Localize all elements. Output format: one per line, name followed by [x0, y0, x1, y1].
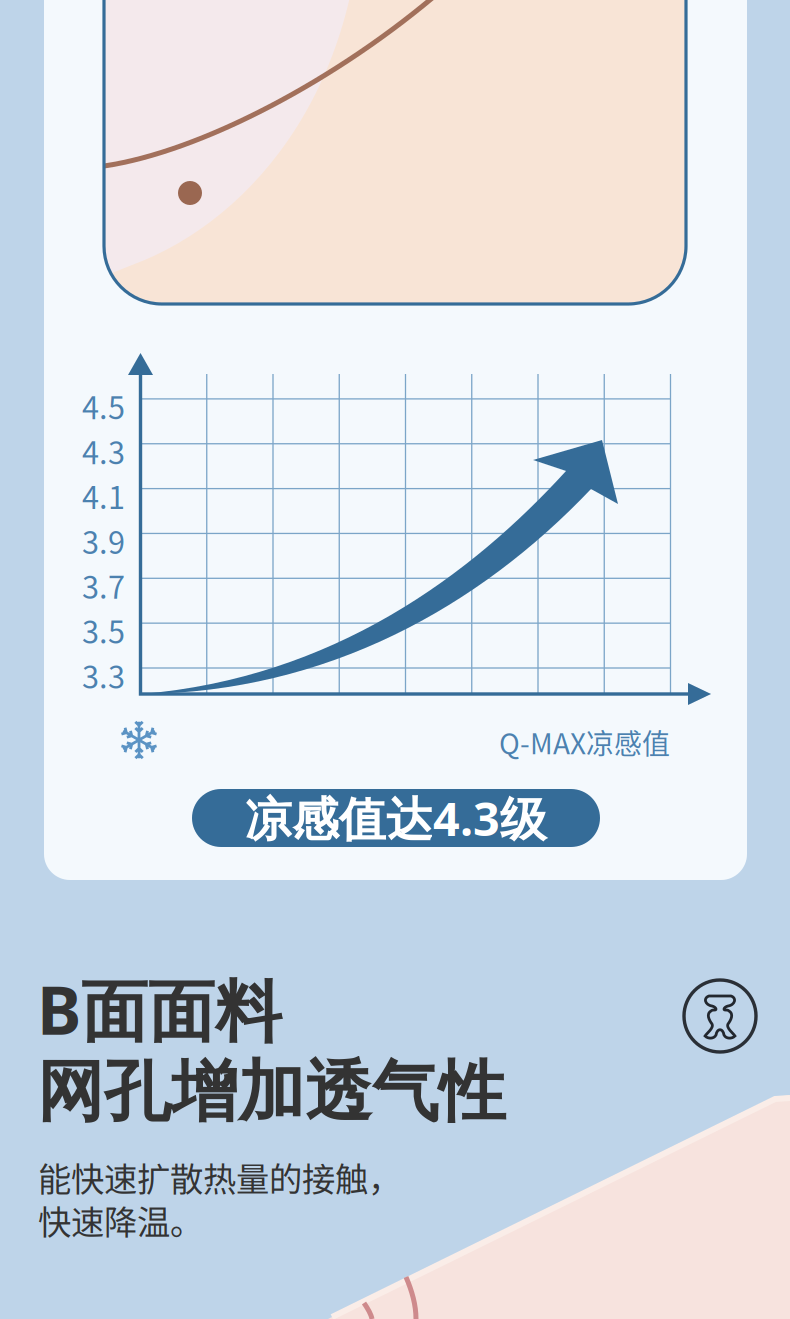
staticText: 快速降温。 — [38, 1196, 203, 1244]
staticText: 4.5 — [82, 384, 125, 428]
staticText: 3.5 — [82, 608, 125, 652]
staticText: 4.3 — [82, 429, 125, 473]
staticText: 3.9 — [82, 518, 125, 563]
staticText: 4.1 — [82, 473, 125, 518]
staticText: 3.3 — [82, 653, 125, 697]
button[interactable]: 凉感值达4.3级 — [192, 789, 600, 847]
staticText: B面面料 — [37, 963, 282, 1055]
staticText: Q-MAX凉感值 — [499, 722, 670, 762]
staticText: 网孔增加透气性 — [37, 1050, 506, 1134]
staticText: 能快速扩散热量的接触， — [38, 1153, 401, 1201]
staticText: 3.7 — [82, 563, 125, 608]
staticText: 凉感值达4.3级 — [245, 786, 547, 850]
